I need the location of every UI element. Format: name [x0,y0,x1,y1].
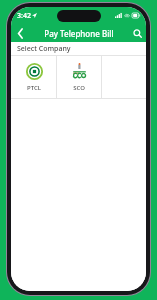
button[interactable]: PTCL [11,56,56,99]
staticText: SCO [73,84,85,92]
button[interactable]: Search [128,24,146,42]
staticText: Select Company [17,44,71,54]
button[interactable]: Back [11,24,29,42]
staticText: Pay Telephone Bill [44,28,114,39]
button[interactable]: SCO [57,56,101,99]
staticText: PTCL [27,84,41,92]
staticText: 3:42 [17,11,31,21]
